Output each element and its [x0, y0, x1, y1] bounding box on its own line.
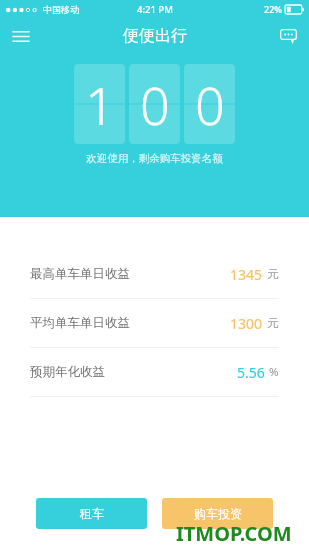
- staticText: 欢迎使用，剩余购车投资名额: [0, 152, 309, 165]
- staticText: 平均单车单日收益: [30, 315, 130, 331]
- staticText: 4:21 PM: [137, 3, 173, 16]
- staticText: 租车: [80, 506, 104, 521]
- staticText: 1345: [230, 265, 263, 284]
- staticText: 最高单车单日收益: [30, 266, 130, 282]
- staticText: 1300: [230, 314, 263, 333]
- button[interactable]: 最高单车单日收益: [0, 250, 309, 298]
- staticText: 购车投资: [194, 506, 242, 521]
- staticText: 5.56: [237, 363, 265, 382]
- staticText: 0: [140, 69, 170, 140]
- staticText: %: [269, 364, 279, 380]
- staticText: 中国移动: [43, 4, 79, 15]
- staticText: 22%: [264, 3, 282, 15]
- button[interactable]: Messages: [267, 18, 309, 54]
- button[interactable]: 平均单车单日收益: [0, 299, 309, 347]
- button[interactable]: 预期年化收益: [0, 348, 309, 396]
- staticText: 0: [195, 69, 225, 140]
- staticText: 元: [267, 267, 279, 281]
- button[interactable]: Menu: [0, 18, 42, 54]
- button[interactable]: 租车: [36, 498, 147, 529]
- staticText: ITMOP.COM: [176, 520, 292, 547]
- staticText: 预期年化收益: [30, 364, 105, 380]
- staticText: 1: [85, 69, 115, 140]
- staticText: 便便出行: [123, 26, 187, 46]
- button[interactable]: 购车投资: [162, 498, 273, 529]
- staticText: 元: [267, 316, 279, 330]
